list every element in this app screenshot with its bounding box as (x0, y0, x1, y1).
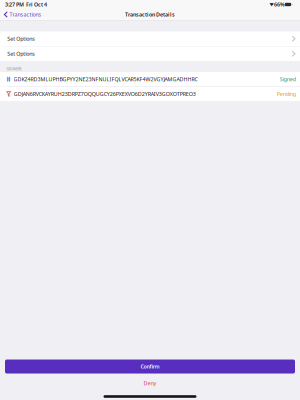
staticText: 66% (274, 1, 285, 8)
button[interactable]: GDKZ4RD3MLUPHBGPYY2NE23NFNULIFQLVCAR5KF4… (0, 72, 300, 86)
button[interactable]: Set Options (0, 31, 300, 46)
staticText: 3:27 PM (5, 1, 24, 8)
staticText: GDJAN6RVCKAYRUH23DRPZ7OQQUGCY26PXEXVO6D2… (14, 90, 196, 98)
button[interactable]: Deny (0, 373, 300, 393)
staticText: Confirm (140, 363, 159, 370)
staticText: Transaction Details (125, 11, 175, 18)
staticText: Set Options (7, 50, 35, 57)
staticText: Set Options (7, 35, 35, 42)
staticText: SIGNERS (6, 66, 21, 71)
staticText: Pending (277, 90, 296, 98)
button[interactable]: GDJAN6RVCKAYRUH23DRPZ7OQQUGCY26PXEXVO6D2… (0, 87, 300, 101)
button[interactable]: Transactions (0, 9, 47, 20)
staticText: Deny (143, 380, 156, 387)
button[interactable]: Confirm (5, 359, 295, 373)
button[interactable]: Set Options (0, 46, 300, 61)
staticText: Transactions (9, 11, 41, 18)
staticText: GDKZ4RD3MLUPHBGPYY2NE23NFNULIFQLVCAR5KF4… (14, 76, 198, 83)
staticText: Signed (280, 76, 296, 83)
staticText: Fri Oct 4 (24, 1, 47, 8)
